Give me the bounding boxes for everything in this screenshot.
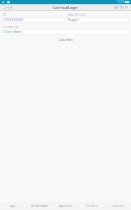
staticText: Lagerbuch [58, 204, 72, 208]
staticText: Leerlauf/Lager [53, 5, 78, 10]
staticText: Kunden [86, 204, 98, 208]
staticText: Lager [10, 204, 17, 208]
staticText: Bezeichnung [68, 13, 86, 16]
staticText: Löschen [58, 37, 72, 42]
button[interactable]: Speichern [112, 5, 130, 10]
button[interactable]: Löschen [2, 35, 129, 44]
staticText: Kommentar [3, 25, 18, 28]
button[interactable]: Artikelstamm [26, 202, 52, 210]
staticText: Inventur [112, 204, 124, 208]
staticText: Zurück [3, 6, 12, 9]
staticText: 1004000000 [3, 18, 23, 22]
button[interactable]: Lager [0, 202, 26, 210]
staticText: Client Notes [3, 30, 21, 34]
button[interactable]: Kunden [79, 202, 105, 210]
staticText: 100% [116, 0, 124, 4]
button[interactable]: Inventur [105, 202, 131, 210]
staticText: Speichern [114, 6, 128, 9]
staticText: Artikelstamm [31, 204, 47, 208]
staticText: ID [3, 13, 6, 16]
button[interactable]: Zurück [1, 5, 14, 10]
staticText: Regal 2 [68, 18, 79, 22]
button[interactable]: Lagerbuch [52, 202, 79, 210]
